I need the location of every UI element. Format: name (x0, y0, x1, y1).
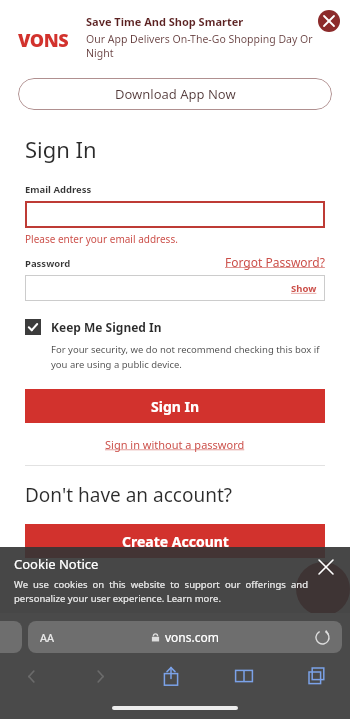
staticText: Password (25, 257, 225, 270)
button[interactable]: Create Account (25, 524, 325, 558)
button[interactable]: Forgot Password? (225, 254, 325, 270)
staticText: Our App Delivers On-The-Go Shopping Day … (86, 32, 316, 60)
button[interactable]: Share (156, 661, 186, 691)
staticText: AA (40, 630, 55, 645)
button[interactable] (0, 621, 22, 653)
staticText: Cookie Notice (14, 555, 99, 573)
staticText: Keep Me Signed In (51, 319, 162, 335)
staticText: Sign in without a password (105, 437, 245, 452)
button[interactable]: Bookmarks (229, 661, 259, 691)
staticText: Email Address (25, 183, 92, 196)
staticText: Sign In (25, 134, 97, 164)
staticText: Don't have an account? (25, 482, 233, 508)
staticText: Create Account (122, 532, 229, 551)
button[interactable]: Back (18, 663, 44, 689)
staticText: Save Time And Shop Smarter (86, 14, 244, 29)
button[interactable]: Tabs (302, 661, 332, 691)
button[interactable] (25, 201, 325, 228)
button[interactable]: Sign in without a password (25, 437, 325, 452)
button[interactable]: Keep Me Signed In (25, 319, 325, 335)
staticText: VONS (18, 28, 69, 53)
button[interactable]: Show (25, 275, 325, 301)
staticText: Download App Now (115, 85, 236, 103)
button[interactable]: AA (28, 621, 342, 653)
button[interactable]: Reload (314, 629, 330, 645)
button[interactable]: Sign In (25, 389, 325, 423)
button[interactable]: Close banner (318, 10, 340, 32)
staticText: Sign In (151, 397, 200, 416)
staticText: Please enter your email address. (25, 232, 178, 246)
staticText: We use cookies on this website to suppor… (14, 578, 308, 605)
button[interactable]: Chat (296, 562, 350, 616)
button[interactable]: Show (291, 282, 317, 295)
staticText: For your security, we do not recommend c… (51, 343, 325, 371)
staticText: Forgot Password? (225, 254, 325, 270)
staticText: vons.com (165, 629, 219, 645)
staticText: Show (291, 282, 317, 295)
button[interactable]: Dismiss cookie notice (316, 557, 336, 577)
button[interactable]: Download App Now (18, 78, 332, 110)
button[interactable]: Forward (87, 663, 113, 689)
